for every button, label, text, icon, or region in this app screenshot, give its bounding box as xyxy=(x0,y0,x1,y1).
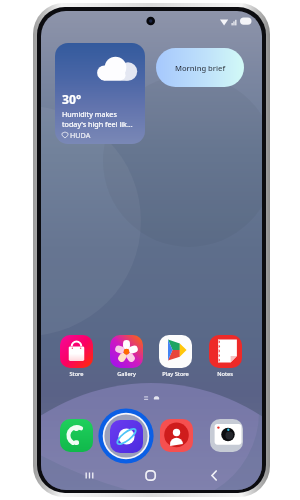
button[interactable]: Store xyxy=(54,335,98,382)
button[interactable]: 30° xyxy=(55,43,145,144)
staticText: Morning brief xyxy=(175,63,226,73)
staticText: Humidity makes xyxy=(62,109,117,119)
staticText: today's high feel lik... xyxy=(62,119,133,129)
button[interactable]: Phone xyxy=(60,419,93,452)
staticText: Play Store xyxy=(162,370,189,378)
button[interactable]: Camera xyxy=(210,419,243,452)
staticText: Notes xyxy=(217,370,233,378)
staticText: Gallery xyxy=(117,370,136,378)
button[interactable]: Gallery xyxy=(104,335,148,382)
button[interactable]: Morning brief xyxy=(156,48,244,87)
button[interactable]: Notes xyxy=(203,335,247,382)
button[interactable]: Contacts xyxy=(160,419,193,452)
staticText: Store xyxy=(69,370,84,378)
staticText: 30° xyxy=(62,91,82,108)
staticText: HUDA xyxy=(70,130,91,140)
button[interactable]: Play Store xyxy=(153,335,197,382)
button[interactable]: Internet xyxy=(98,408,154,464)
